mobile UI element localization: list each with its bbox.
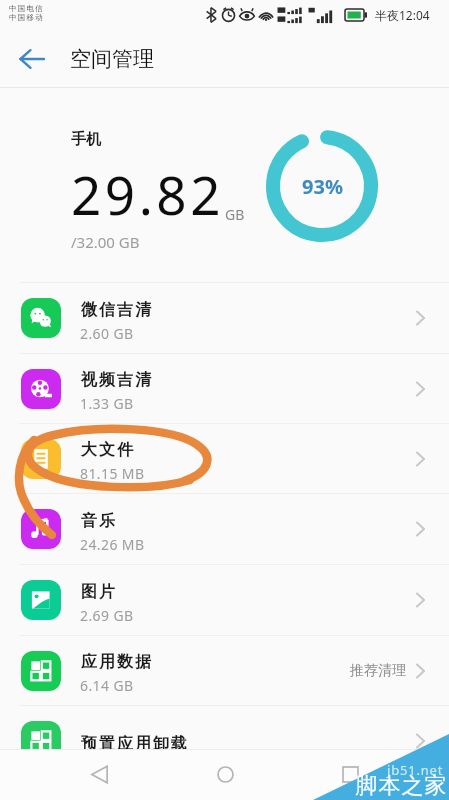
staticText: 脚本之家 xyxy=(355,772,447,800)
button[interactable]: Back xyxy=(73,749,125,800)
button[interactable]: 预置应用卸载 xyxy=(0,706,449,777)
staticText: 2.60 GB xyxy=(80,324,134,343)
button[interactable]: Back xyxy=(12,39,52,79)
staticText: 29.82 xyxy=(71,158,224,230)
staticText: 预置应用卸载 xyxy=(80,734,188,754)
button[interactable]: 应用数据 xyxy=(0,636,449,706)
button[interactable]: 图片 xyxy=(0,565,449,636)
staticText: jb51.net xyxy=(387,761,444,779)
staticText: 手机 xyxy=(71,130,101,149)
staticText: 音乐 xyxy=(80,511,116,531)
staticText: 半夜12:04 xyxy=(375,7,430,23)
staticText: 6.14 GB xyxy=(80,676,134,695)
staticText: 大文件 xyxy=(80,440,134,460)
staticText: 空间管理 xyxy=(70,46,154,72)
button[interactable]: 音乐 xyxy=(0,494,449,565)
button[interactable]: 视频吉清 xyxy=(0,354,449,424)
staticText: /32.00 GB xyxy=(71,232,140,252)
button[interactable]: Home xyxy=(199,749,251,800)
staticText: 推荐清理 xyxy=(350,662,406,680)
staticText: GB xyxy=(225,205,245,224)
staticText: 图片 xyxy=(80,582,116,602)
button[interactable]: 大文件 xyxy=(0,424,449,494)
staticText: 81.15 MB xyxy=(80,464,145,483)
staticText: 应用数据 xyxy=(80,652,152,672)
staticText: 93% xyxy=(302,173,343,200)
staticText: 24.26 MB xyxy=(80,535,145,554)
staticText: 中国电信 xyxy=(9,4,44,13)
staticText: 1.33 GB xyxy=(80,394,134,413)
staticText: 中国移动 xyxy=(9,13,44,22)
staticText: 微信吉清 xyxy=(80,300,152,320)
button[interactable]: Recents xyxy=(324,749,376,800)
staticText: 视频吉清 xyxy=(80,370,152,390)
staticText: 2.69 GB xyxy=(80,606,134,625)
button[interactable]: 微信吉清 xyxy=(0,283,449,354)
